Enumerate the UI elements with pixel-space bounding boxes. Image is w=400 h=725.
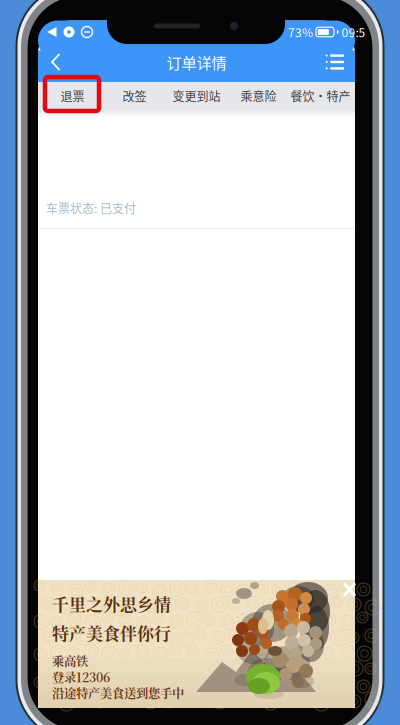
button[interactable]: 改签 <box>103 82 165 110</box>
button[interactable]: Menu <box>318 44 352 80</box>
button[interactable]: 乘意险 <box>227 82 289 110</box>
staticText: 乘意险 <box>240 87 276 105</box>
button[interactable]: 变更到站 <box>165 82 227 110</box>
staticText: 车票状态: 已支付 <box>46 199 136 217</box>
staticText: 乘高铁 <box>52 652 88 670</box>
staticText: 变更到站 <box>172 87 220 105</box>
staticText: 订单详情 <box>166 51 226 73</box>
staticText: 登录12306 <box>52 668 110 686</box>
button[interactable]: Back <box>39 44 73 80</box>
staticText: 餐饮·特产 <box>290 87 350 105</box>
staticText: 09:5 <box>341 23 365 41</box>
staticText: 改签 <box>122 87 146 105</box>
staticText: 千里之外思乡情 <box>52 592 171 616</box>
button[interactable]: Close advertisement <box>341 581 358 598</box>
staticText: 沿途特产美食送到您手中 <box>52 684 184 702</box>
staticText: 73% <box>288 23 313 41</box>
staticText: 特产美食伴你行 <box>52 621 171 645</box>
staticText: 退票 <box>60 87 84 105</box>
button[interactable]: 餐饮·特产 <box>289 82 351 110</box>
button[interactable]: 退票 <box>41 82 103 110</box>
